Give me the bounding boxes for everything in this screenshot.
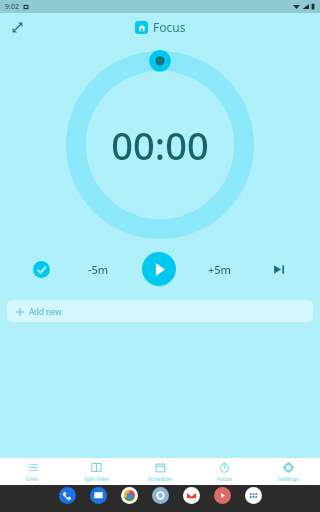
button[interactable]: Settings xyxy=(152,487,169,504)
button[interactable]: Add new xyxy=(7,300,313,322)
button[interactable]: All apps xyxy=(245,487,262,504)
button[interactable]: Play xyxy=(142,252,176,286)
button[interactable]: -5m xyxy=(80,256,117,283)
button[interactable]: Settings xyxy=(256,458,320,485)
staticText: Split View xyxy=(84,475,109,482)
staticText: 00:00 xyxy=(111,119,209,171)
staticText: Schedule xyxy=(148,475,172,482)
staticText: Settings xyxy=(278,475,299,482)
staticText: Focus xyxy=(217,475,232,482)
staticText: -5m xyxy=(88,262,109,277)
button[interactable]: Phone xyxy=(59,487,76,504)
button[interactable]: Messages xyxy=(90,487,107,504)
button[interactable]: Expand xyxy=(6,16,28,38)
button[interactable]: Chrome xyxy=(121,487,138,504)
button[interactable]: Focus xyxy=(135,19,186,35)
staticText: +5m xyxy=(208,262,232,277)
staticText: Focus xyxy=(153,19,186,35)
button[interactable]: YouTube xyxy=(214,487,231,504)
button[interactable]: Split View xyxy=(64,458,128,485)
button[interactable]: +5m xyxy=(200,256,240,283)
staticText: Lists xyxy=(26,475,38,482)
button[interactable]: Focus xyxy=(192,458,256,485)
button[interactable]: Mark done xyxy=(26,254,56,284)
staticText: Add new xyxy=(29,306,62,317)
staticText: 9:02 xyxy=(5,2,19,12)
button[interactable]: Skip next xyxy=(264,254,294,284)
button[interactable]: Gmail xyxy=(183,487,200,504)
button[interactable]: Lists xyxy=(0,458,64,485)
button[interactable]: Schedule xyxy=(128,458,192,485)
